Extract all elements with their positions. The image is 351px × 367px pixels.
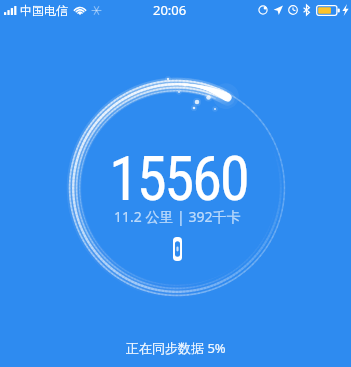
staticText: 15560 (109, 143, 248, 214)
staticText: 11.2 公里 | 392千卡 (114, 207, 241, 226)
staticText: 中国电信 (20, 3, 68, 18)
staticText: 20:06 (153, 1, 187, 19)
staticText: 正在同步数据 5% (126, 339, 226, 357)
